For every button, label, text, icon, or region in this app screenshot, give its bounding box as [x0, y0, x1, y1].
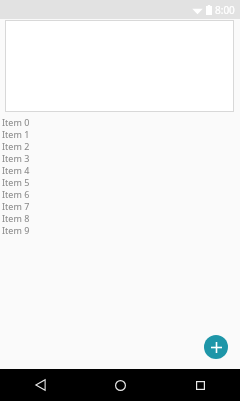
- button[interactable]: Home: [80, 369, 160, 401]
- button[interactable]: Item 5: [0, 176, 240, 188]
- button[interactable]: Item 8: [0, 212, 240, 224]
- button[interactable]: Item 3: [0, 152, 240, 164]
- staticText: Item 1: [2, 128, 30, 140]
- staticText: Item 2: [2, 140, 30, 152]
- staticText: Item 8: [2, 212, 30, 224]
- button[interactable]: Item 6: [0, 188, 240, 200]
- button[interactable]: [5, 20, 234, 112]
- staticText: 8:00: [215, 3, 235, 17]
- button[interactable]: Item 9: [0, 224, 240, 236]
- staticText: Item 0: [2, 116, 30, 128]
- button[interactable]: Item 4: [0, 164, 240, 176]
- staticText: Item 4: [2, 164, 30, 176]
- button[interactable]: Item 1: [0, 128, 240, 140]
- button[interactable]: Recent apps: [160, 369, 240, 401]
- button[interactable]: Back: [0, 369, 80, 401]
- staticText: Item 3: [2, 152, 30, 164]
- button[interactable]: Item 7: [0, 200, 240, 212]
- staticText: Item 5: [2, 176, 30, 188]
- staticText: Item 6: [2, 188, 30, 200]
- button[interactable]: Add: [204, 335, 228, 359]
- button[interactable]: Item 2: [0, 140, 240, 152]
- staticText: Item 7: [2, 200, 30, 212]
- staticText: Item 9: [2, 224, 30, 236]
- button[interactable]: Item 0: [0, 116, 240, 128]
